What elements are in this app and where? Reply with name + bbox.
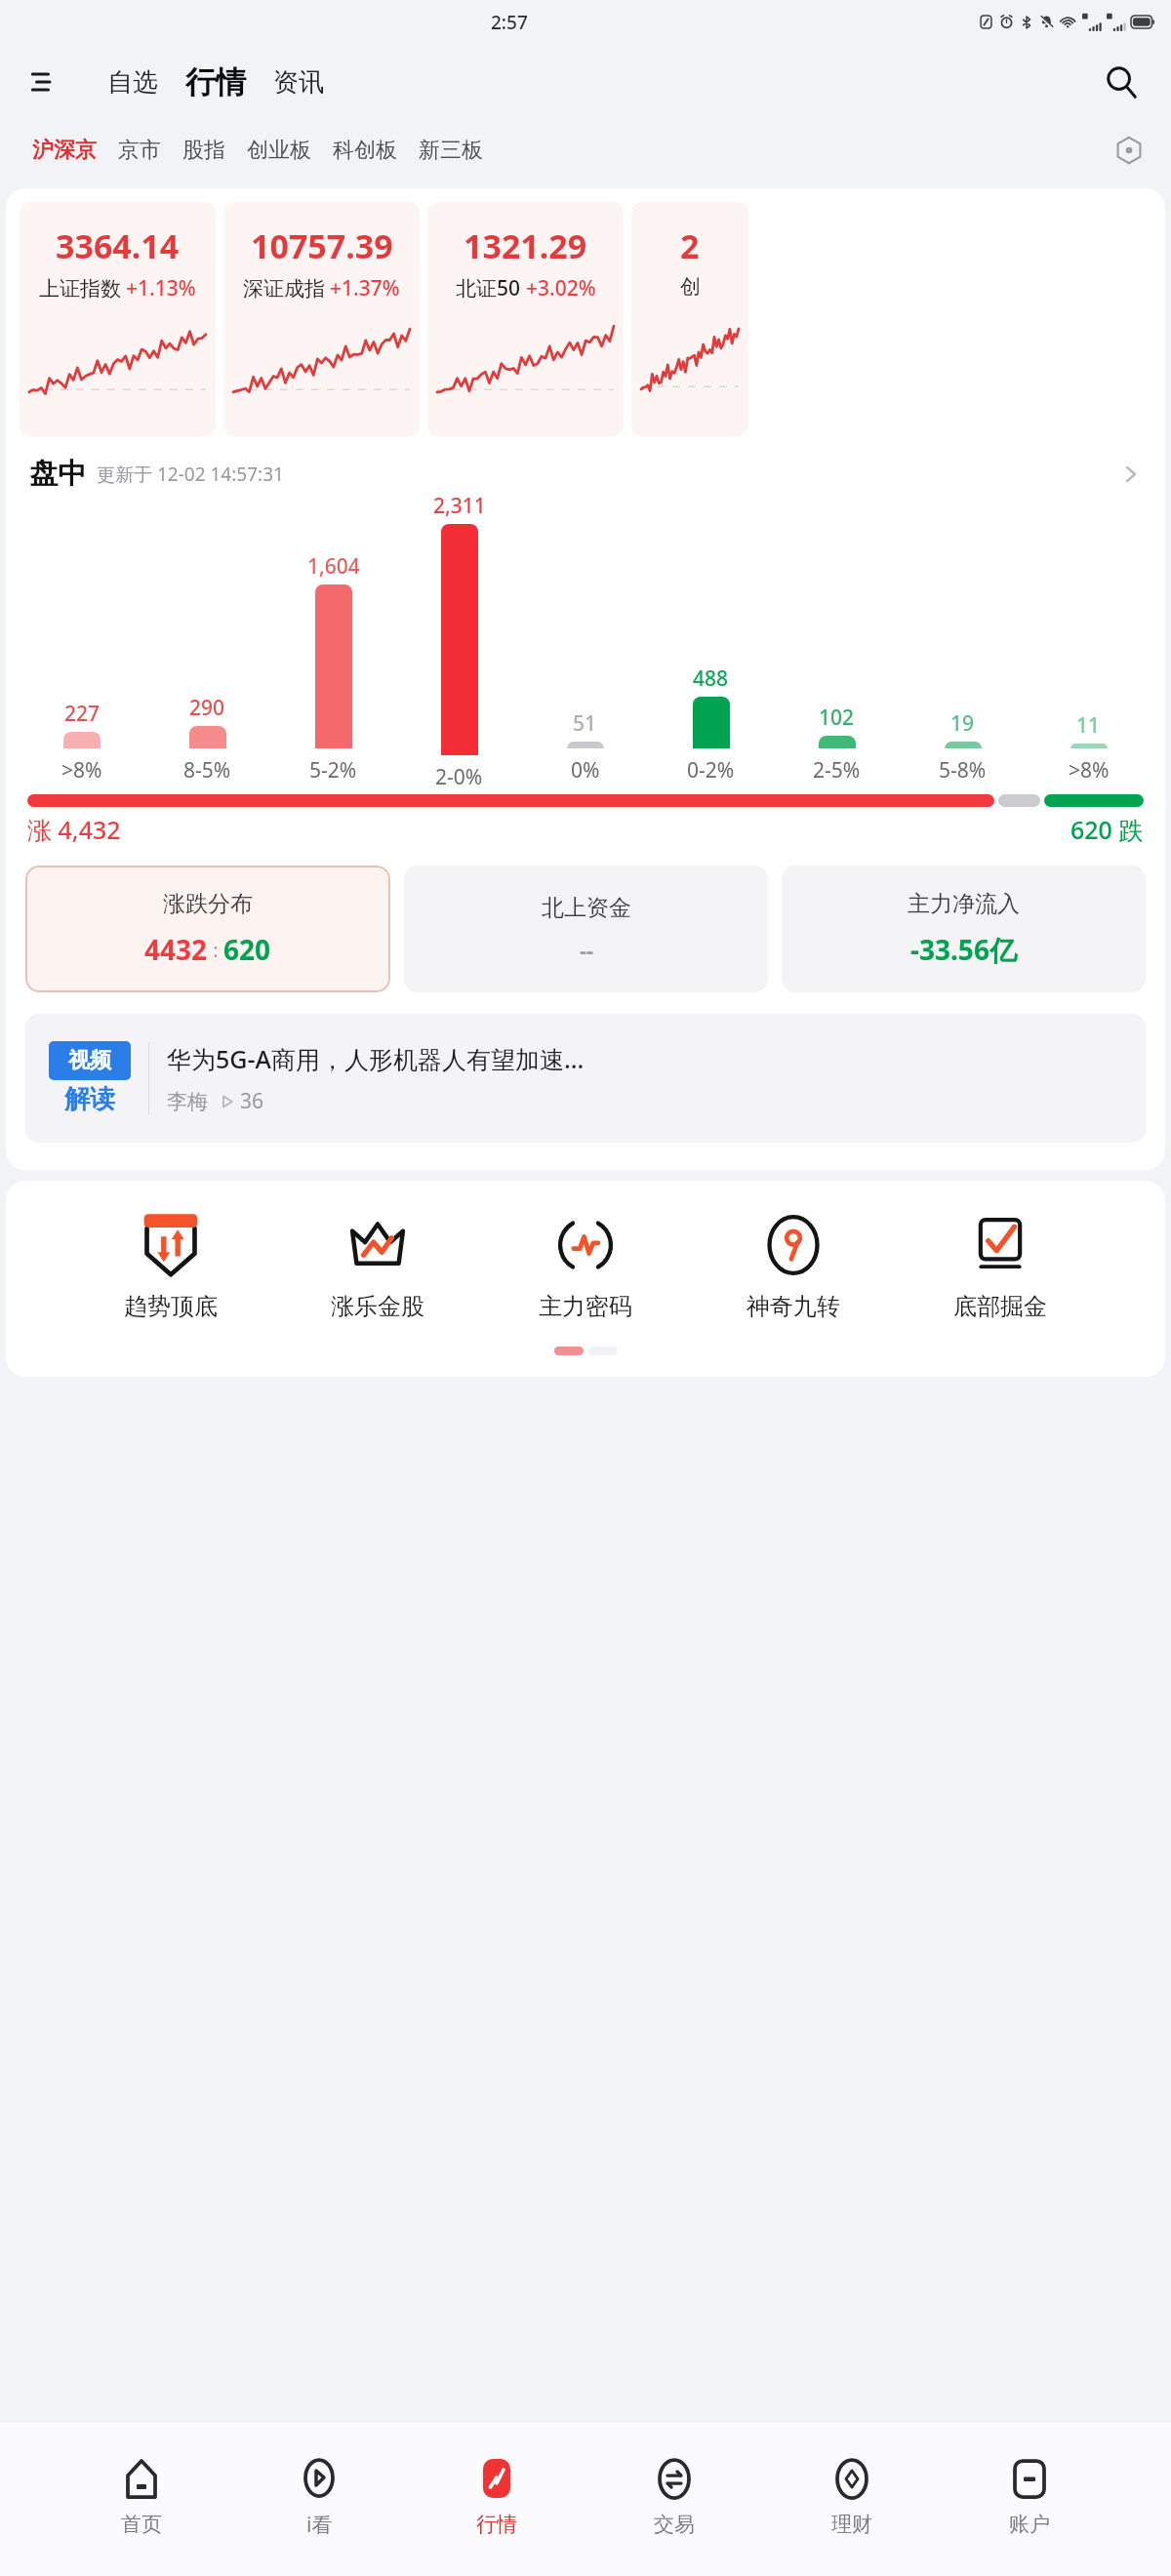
staticText: 0-2% [687, 756, 735, 785]
staticText: 自选 [107, 66, 158, 99]
button[interactable]: 102 [774, 704, 900, 785]
staticText: 5-2% [309, 756, 357, 785]
staticText: 2-5% [813, 756, 861, 785]
staticText: 2:57 [491, 10, 528, 35]
staticText: i看 [306, 2511, 333, 2539]
staticText: 盘中 [29, 456, 86, 492]
staticText: 行情 [476, 2512, 517, 2537]
staticText: 深证成指 [243, 276, 325, 302]
button[interactable]: 2,311 [396, 492, 522, 785]
button[interactable]: 创业板 [236, 131, 322, 170]
staticText: 51 [573, 709, 597, 738]
button[interactable]: 2 [631, 202, 748, 436]
button[interactable]: Edit tabs [1103, 124, 1155, 177]
staticText: 2,311 [433, 492, 486, 520]
staticText: 创业板 [247, 137, 311, 164]
button[interactable]: 19 [900, 709, 1026, 785]
button[interactable]: 新三板 [408, 131, 494, 170]
button[interactable]: Menu [21, 60, 66, 104]
staticText: +1.37% [330, 274, 400, 302]
button[interactable]: 趋势顶底 [116, 1206, 225, 1325]
button[interactable]: 11 [1026, 711, 1151, 785]
staticText: 资讯 [273, 66, 324, 99]
staticText: 主力净流入 [908, 890, 1020, 918]
staticText: 视频 [68, 1047, 111, 1074]
staticText: 19 [950, 709, 975, 738]
staticText: 1321.29 [464, 223, 587, 268]
staticText: 京市 [118, 137, 161, 164]
staticText: 上证指数 [39, 276, 121, 302]
staticText: 交易 [654, 2512, 695, 2537]
staticText: 股指 [182, 137, 225, 164]
staticText: 北证50 [456, 274, 521, 302]
button[interactable]: 交易 [638, 2449, 710, 2543]
staticText: 主力密码 [539, 1292, 632, 1321]
staticText: 620 跌 [1070, 813, 1144, 846]
staticText: 创 [680, 274, 701, 300]
staticText: 理财 [831, 2512, 872, 2537]
staticText: >8% [61, 756, 102, 785]
staticText: 102 [819, 704, 855, 732]
staticText: 更新于 12-02 14:57:31 [97, 462, 284, 487]
button[interactable]: 盘中 [6, 456, 1165, 492]
button[interactable]: 视频 [25, 1014, 1146, 1143]
staticText: : [208, 937, 223, 963]
staticText: 620 [223, 931, 271, 968]
button[interactable]: 3364.14 [20, 202, 216, 436]
button[interactable]: 涨乐金股 [323, 1206, 432, 1325]
staticText: +1.13% [126, 274, 196, 302]
button[interactable]: i看 [283, 2448, 355, 2545]
button[interactable]: 理财 [816, 2449, 888, 2543]
staticText: 涨 4,432 [27, 813, 121, 846]
staticText: 0% [571, 756, 600, 785]
button[interactable]: 1321.29 [427, 202, 624, 436]
button[interactable]: 首页 [105, 2449, 178, 2543]
button[interactable]: 股指 [172, 131, 236, 170]
staticText: 4432 [144, 931, 208, 968]
button[interactable]: 自选 [101, 66, 164, 99]
staticText: 账户 [1009, 2512, 1050, 2537]
button[interactable]: 行情 [180, 63, 252, 101]
button[interactable]: 主力净流入 [782, 865, 1146, 992]
button[interactable]: 科创板 [322, 131, 408, 170]
button[interactable]: 主力密码 [531, 1206, 640, 1325]
staticText: 解读 [64, 1083, 115, 1115]
button[interactable]: 290 [144, 694, 270, 785]
button[interactable]: 北上资金 [404, 865, 768, 992]
staticText: +3.02% [526, 274, 596, 302]
staticText: 290 [189, 694, 225, 722]
button[interactable]: 京市 [107, 131, 172, 170]
staticText: 首页 [121, 2512, 162, 2537]
button[interactable]: 涨跌分布 [25, 865, 390, 992]
staticText: 227 [64, 700, 101, 728]
button[interactable]: 底部掘金 [946, 1206, 1055, 1325]
button[interactable]: 51 [522, 709, 648, 785]
staticText: -33.56亿 [910, 931, 1017, 968]
staticText: 科创板 [333, 137, 397, 164]
staticText: 神奇九转 [747, 1292, 840, 1321]
staticText: >8% [1069, 756, 1110, 785]
staticText: 李梅 [167, 1089, 208, 1114]
staticText: 10757.39 [251, 223, 393, 268]
staticText: -- [580, 935, 594, 964]
staticText: 11 [1076, 711, 1101, 740]
staticText: 8-5% [183, 756, 231, 785]
staticText: 华为5G-A商用，人形机器人有望加速... [167, 1042, 585, 1075]
staticText: 沪深京 [32, 137, 97, 164]
staticText: 趋势顶底 [124, 1292, 218, 1321]
staticText: 2 [680, 223, 700, 268]
button[interactable]: 沪深京 [21, 131, 107, 170]
button[interactable]: Search [1095, 56, 1148, 108]
staticText: 1,604 [307, 552, 360, 581]
button[interactable]: 10757.39 [223, 202, 420, 436]
staticText: 北上资金 [542, 894, 631, 922]
staticText: 36 [240, 1087, 264, 1115]
button[interactable]: 账户 [993, 2449, 1066, 2543]
button[interactable]: 资讯 [267, 66, 330, 99]
button[interactable]: 1,604 [270, 552, 396, 785]
button[interactable]: 488 [648, 664, 774, 785]
button[interactable]: 227 [20, 700, 144, 785]
button[interactable]: 行情 [461, 2449, 533, 2543]
button[interactable]: 神奇九转 [739, 1206, 848, 1325]
staticText: 488 [693, 664, 729, 693]
